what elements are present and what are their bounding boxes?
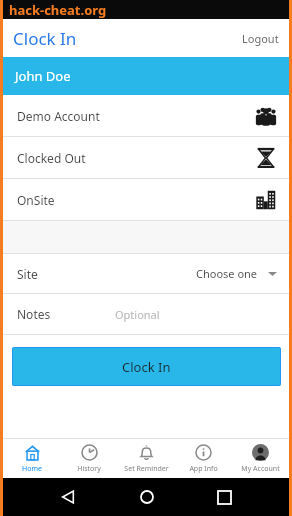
staticText: App Info: [189, 464, 218, 474]
button[interactable]: Logout: [232, 23, 289, 54]
button[interactable]: Notes: [3, 294, 289, 334]
staticText: History: [77, 464, 101, 474]
staticText: John Doe: [15, 67, 71, 85]
staticText: Site: [17, 266, 38, 282]
staticText: Clocked Out: [17, 150, 86, 166]
staticText: Optional: [115, 307, 160, 322]
button[interactable]: History: [61, 438, 117, 478]
staticText: Logout: [242, 31, 279, 46]
button[interactable]: Home: [4, 438, 60, 478]
button[interactable]: App Info: [175, 438, 231, 478]
staticText: My Account: [241, 464, 280, 474]
staticText: Set Reminder: [124, 464, 169, 474]
button[interactable]: Back: [55, 484, 81, 510]
staticText: Demo Account: [17, 108, 100, 124]
button[interactable]: Clocked Out: [3, 137, 289, 179]
button[interactable]: Clock In: [12, 347, 281, 386]
staticText: OnSite: [17, 192, 55, 208]
staticText: Notes: [17, 306, 51, 322]
button[interactable]: My Account: [232, 438, 288, 478]
staticText: Clock In: [13, 27, 77, 50]
staticText: Clock In: [122, 358, 171, 376]
staticText: Choose one: [196, 266, 258, 281]
staticText: hack-cheat.org: [9, 1, 107, 19]
button[interactable]: Demo Account: [3, 95, 289, 137]
button[interactable]: John Doe: [3, 57, 289, 95]
button[interactable]: Site: [3, 254, 289, 293]
staticText: Home: [22, 464, 42, 474]
button[interactable]: Home: [134, 484, 160, 510]
button[interactable]: Recent apps: [212, 485, 237, 510]
button[interactable]: Set Reminder: [118, 438, 174, 478]
button[interactable]: OnSite: [3, 179, 289, 221]
